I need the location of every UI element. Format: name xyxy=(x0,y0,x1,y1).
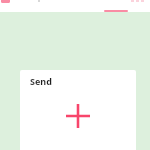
button[interactable]: Actions xyxy=(131,0,146,2)
button[interactable]: Add new xyxy=(63,101,93,131)
staticText: Send xyxy=(30,75,52,87)
button[interactable]: Tab three xyxy=(104,0,128,12)
button[interactable]: Menu xyxy=(1,0,10,3)
button[interactable]: Tab one xyxy=(0,0,60,12)
button[interactable]: Send xyxy=(20,70,136,150)
